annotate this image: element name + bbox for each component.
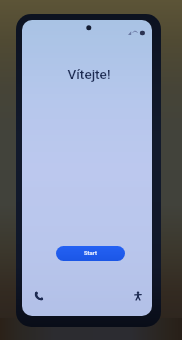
staticText: Vítejte!: [24, 66, 152, 82]
button[interactable]: Emergency call: [30, 287, 48, 305]
button[interactable]: Start: [56, 246, 125, 261]
staticText: Start: [84, 250, 97, 257]
button[interactable]: Accessibility: [129, 287, 147, 305]
